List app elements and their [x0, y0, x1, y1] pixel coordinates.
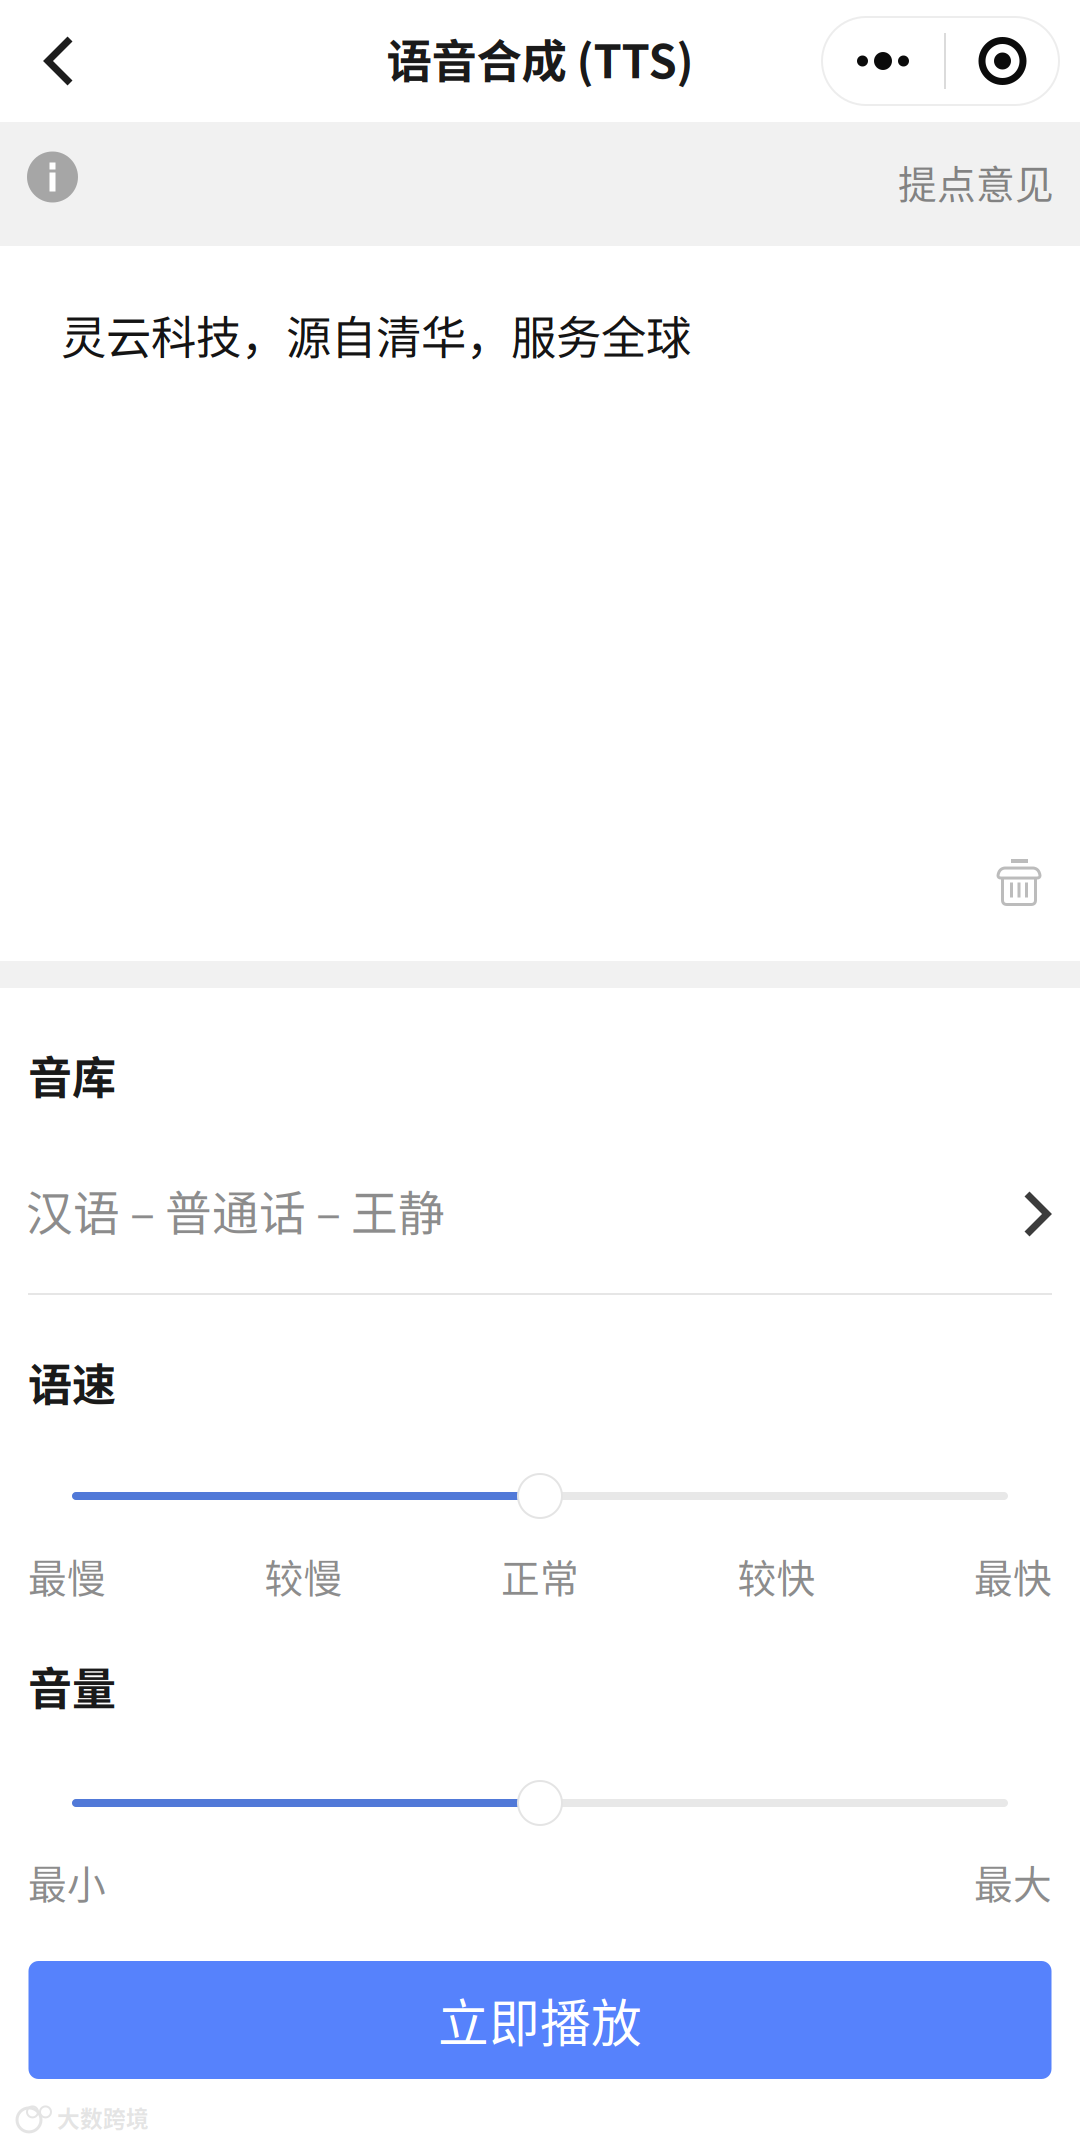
- staticText: 最慢: [28, 1548, 106, 1604]
- staticText: 最快: [974, 1548, 1052, 1604]
- staticText: 最大: [974, 1854, 1052, 1910]
- staticText: 语音合成 (TTS): [386, 26, 693, 91]
- staticText: 汉语 – 普通话 – 王静: [26, 1176, 445, 1244]
- button[interactable]: Clear text: [968, 832, 1070, 933]
- staticText: 较慢: [264, 1548, 342, 1604]
- staticText: 正常: [501, 1548, 579, 1604]
- button[interactable]: 立即播放: [28, 1961, 1051, 2079]
- staticText: 语速: [28, 1350, 116, 1414]
- staticText: 较快: [737, 1548, 815, 1604]
- button[interactable]: 提点意见: [878, 122, 1080, 246]
- staticText: 音量: [28, 1654, 116, 1718]
- staticText: 提点意见: [898, 154, 1054, 210]
- staticText: 音库: [28, 1043, 116, 1107]
- button[interactable]: More options and mini program menu: [822, 0, 1059, 122]
- staticText: 立即播放: [438, 1983, 642, 2057]
- staticText: 灵云科技，源自清华，服务全球: [61, 302, 691, 368]
- staticText: 大数跨境: [57, 2101, 149, 2134]
- staticText: 最小: [28, 1854, 106, 1910]
- button[interactable]: Back: [0, 0, 118, 122]
- button[interactable]: 汉语 – 普通话 – 王静: [0, 1159, 1080, 1261]
